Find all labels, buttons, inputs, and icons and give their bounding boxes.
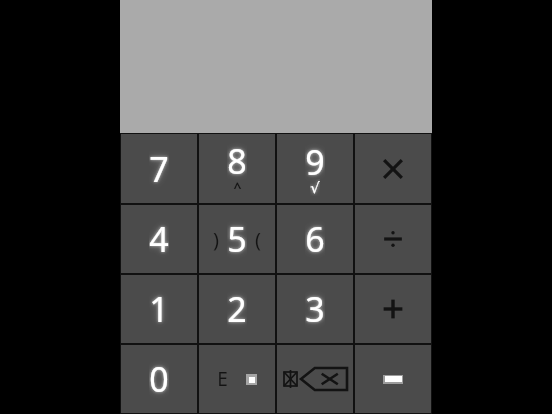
- staticText: 2: [227, 286, 247, 332]
- staticText: ^: [233, 178, 242, 197]
- button[interactable]: 5, parentheses: [199, 205, 275, 273]
- button[interactable]: Multiply: [355, 134, 431, 203]
- staticText: 4: [149, 216, 169, 262]
- staticText: √: [310, 179, 320, 196]
- button[interactable]: 2: [199, 275, 275, 343]
- staticText: (: [255, 226, 261, 253]
- staticText: 2: [227, 286, 247, 332]
- staticText: 7: [149, 146, 169, 192]
- staticText: 8: [227, 138, 247, 184]
- button[interactable]: 0: [121, 345, 197, 413]
- staticText: 4: [149, 216, 169, 262]
- staticText: 2: [227, 286, 247, 332]
- button[interactable]: 6: [277, 205, 353, 273]
- button[interactable]: 7: [121, 134, 197, 203]
- staticText: E: [217, 366, 228, 392]
- staticText: 1: [149, 286, 169, 332]
- staticText: 5: [227, 216, 247, 262]
- staticText: 8: [227, 138, 247, 184]
- staticText: 0: [149, 356, 169, 402]
- staticText: 5: [227, 216, 247, 262]
- button[interactable]: 8, power: [199, 134, 275, 203]
- staticText: 0: [149, 356, 169, 402]
- staticText: 5: [227, 216, 247, 262]
- button[interactable]: 3: [277, 275, 353, 343]
- staticText: 6: [305, 216, 325, 262]
- staticText: ): [213, 226, 219, 253]
- staticText: 4: [149, 216, 169, 262]
- staticText: 3: [305, 286, 325, 332]
- staticText: 9: [305, 139, 325, 185]
- staticText: 9: [305, 139, 325, 185]
- staticText: 6: [305, 216, 325, 262]
- staticText: 6: [305, 216, 325, 262]
- staticText: 3: [305, 286, 325, 332]
- button[interactable]: Backspace, clear: [277, 345, 353, 413]
- button[interactable]: Plus: [355, 275, 431, 343]
- staticText: √: [310, 179, 320, 196]
- button[interactable]: Decimal point, exponent: [199, 345, 275, 413]
- button[interactable]: Minus: [355, 345, 431, 413]
- button[interactable]: 4: [121, 205, 197, 273]
- staticText: √: [310, 179, 320, 196]
- staticText: 3: [305, 286, 325, 332]
- staticText: 7: [149, 146, 169, 192]
- staticText: 0: [149, 356, 169, 402]
- button[interactable]: Divide: [355, 205, 431, 273]
- button[interactable]: 9, square root: [277, 134, 353, 203]
- staticText: 9: [305, 139, 325, 185]
- staticText: 8: [227, 138, 247, 184]
- staticText: 1: [149, 286, 169, 332]
- staticText: 1: [149, 286, 169, 332]
- staticText: 7: [149, 146, 169, 192]
- button[interactable]: 1: [121, 275, 197, 343]
